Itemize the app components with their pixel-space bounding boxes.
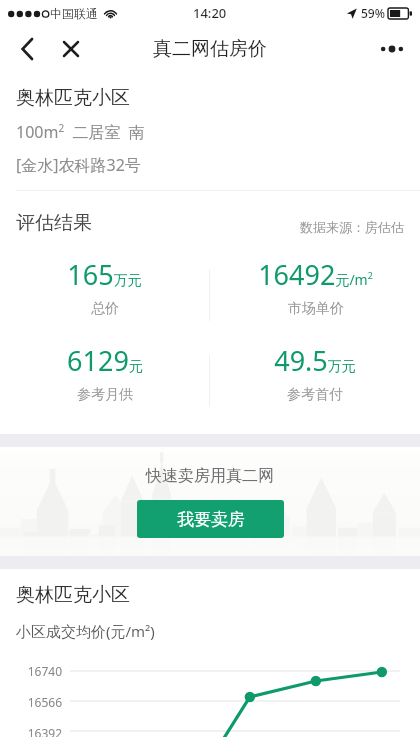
staticText: 中国联通 <box>50 6 98 21</box>
button[interactable]: More options <box>372 29 412 69</box>
staticText: 小区成交均价(元/m²) <box>16 621 155 641</box>
button[interactable]: 我要卖房 <box>137 500 284 538</box>
staticText: 奥林匹克小区 <box>16 86 130 110</box>
staticText: 总价 <box>91 300 119 318</box>
staticText: 数据来源：房估估 <box>300 219 404 235</box>
staticText: 我要卖房 <box>177 509 245 530</box>
staticText: 快速卖房用真二网 <box>146 466 274 486</box>
staticText: 真二网估房价 <box>153 37 267 61</box>
button[interactable]: Close <box>54 32 88 66</box>
staticText: 奥林匹克小区 <box>16 583 130 607</box>
staticText: 参考月供 <box>77 386 133 404</box>
staticText: 16566 <box>0 694 62 710</box>
staticText: 49.5万元 <box>274 342 356 379</box>
staticText: 59% <box>361 5 385 21</box>
staticText: 100m2 二居室 南 <box>16 121 145 143</box>
button[interactable]: Back <box>10 32 44 66</box>
staticText: 165万元 <box>67 256 142 293</box>
staticText: 14:20 <box>193 4 227 22</box>
staticText: 16392 <box>0 725 62 737</box>
staticText: 评估结果 <box>16 211 92 235</box>
staticText: 市场单价 <box>288 300 344 318</box>
staticText: 16740 <box>0 663 62 679</box>
staticText: 16492元/m2 <box>258 256 373 293</box>
staticText: [金水]农科路32号 <box>16 154 141 176</box>
staticText: 6129元 <box>67 342 143 379</box>
staticText: 参考首付 <box>287 386 343 404</box>
